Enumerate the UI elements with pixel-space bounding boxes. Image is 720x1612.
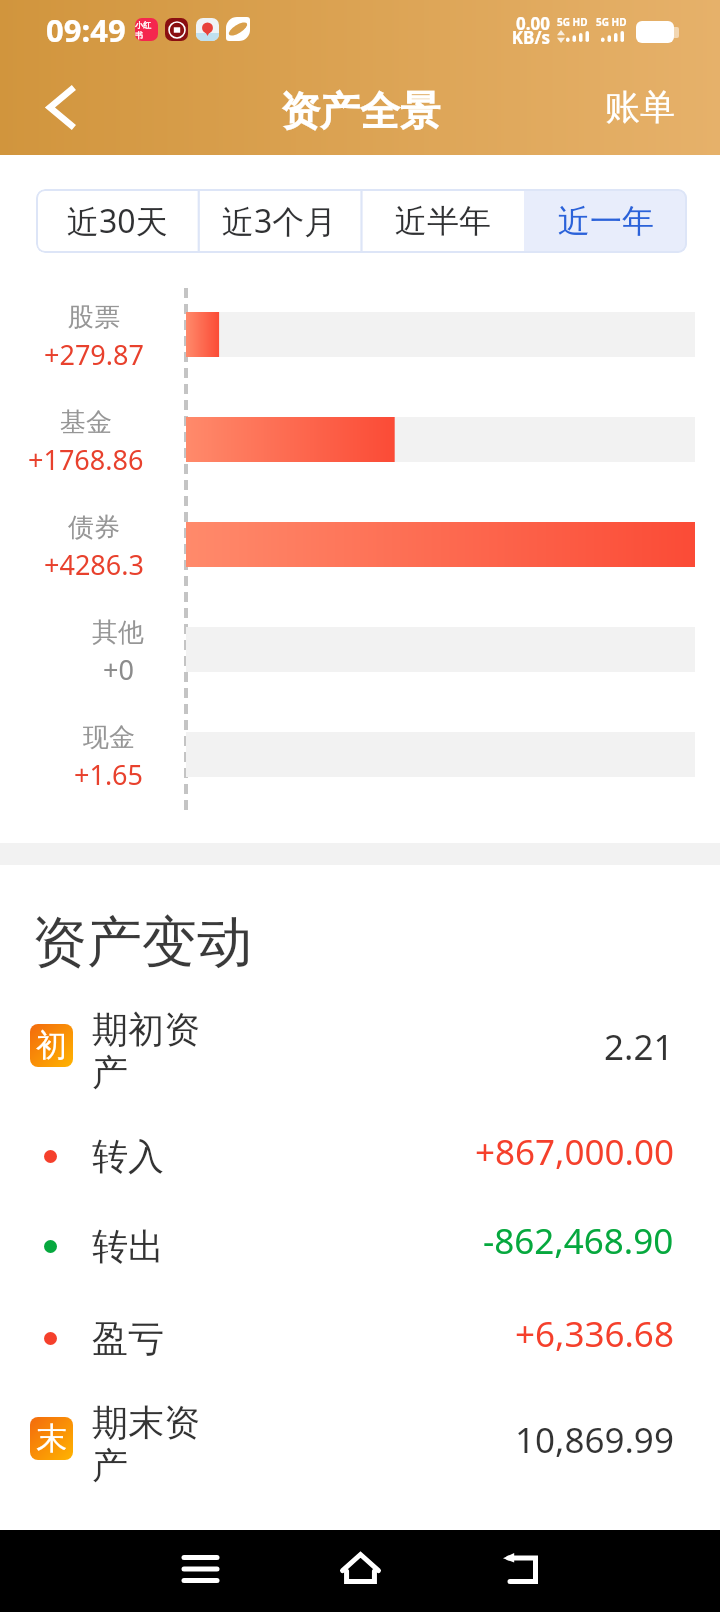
staticText: 期初资产 — [92, 1007, 204, 1096]
staticText: 末 — [36, 1419, 67, 1458]
staticText: +867,000.00 — [475, 1128, 674, 1176]
button[interactable]: 初 — [0, 991, 720, 1112]
staticText: KB/s — [490, 26, 550, 49]
staticText: 近30天 — [67, 199, 168, 243]
button[interactable]: 账单 — [590, 72, 690, 142]
button[interactable]: 债券 — [0, 498, 720, 603]
button[interactable]: 现金 — [0, 708, 720, 810]
staticText: 转出 — [92, 1224, 204, 1269]
button[interactable]: Back — [26, 73, 94, 141]
button[interactable]: 盈亏 — [0, 1291, 720, 1386]
button[interactable]: 基金 — [0, 393, 720, 498]
staticText: 近半年 — [395, 201, 491, 241]
staticText: 股票 — [68, 301, 120, 334]
button[interactable]: 末 — [0, 1386, 720, 1503]
button[interactable]: Back — [485, 1539, 555, 1603]
button[interactable]: 其他 — [0, 603, 720, 708]
button[interactable]: 近半年 — [361, 189, 524, 253]
staticText: +4286.3 — [44, 546, 144, 583]
button[interactable]: 转出 — [0, 1201, 720, 1291]
staticText: 现金 — [83, 721, 135, 754]
button[interactable]: Home — [325, 1539, 395, 1603]
staticText: 0.00 — [490, 12, 550, 35]
staticText: 09:49 — [46, 9, 126, 51]
staticText: 盈亏 — [92, 1316, 204, 1361]
staticText: 小红书 — [135, 20, 158, 40]
staticText: 其他 — [92, 616, 144, 649]
staticText: 初 — [36, 1026, 67, 1065]
staticText: 资产变动 — [32, 908, 252, 977]
staticText: +279.87 — [44, 336, 144, 373]
staticText: 债券 — [68, 511, 120, 544]
staticText: 2.21 — [604, 1023, 674, 1071]
staticText: +1.65 — [74, 756, 144, 793]
staticText: 期末资产 — [92, 1400, 204, 1489]
staticText: -862,468.90 — [483, 1217, 674, 1265]
staticText: 5G HD — [557, 15, 588, 29]
staticText: +6,336.68 — [515, 1310, 674, 1358]
staticText: 资产全景 — [280, 86, 440, 136]
staticText: 账单 — [605, 85, 675, 129]
staticText: 10,869.99 — [515, 1416, 674, 1464]
staticText: +0 — [103, 651, 134, 688]
button[interactable]: Recent apps — [166, 1539, 236, 1603]
staticText: 近一年 — [558, 201, 654, 241]
staticText: 5G HD — [596, 15, 627, 29]
button[interactable]: 近3个月 — [198, 189, 361, 253]
button[interactable]: 股票 — [0, 288, 720, 393]
staticText: 转入 — [92, 1134, 204, 1179]
button[interactable]: 转入 — [0, 1112, 720, 1201]
staticText: 近3个月 — [222, 199, 337, 243]
staticText: 基金 — [60, 406, 112, 439]
button[interactable]: 近30天 — [36, 189, 198, 253]
staticText: +1768.86 — [28, 441, 144, 478]
button[interactable]: 近一年 — [524, 189, 687, 253]
